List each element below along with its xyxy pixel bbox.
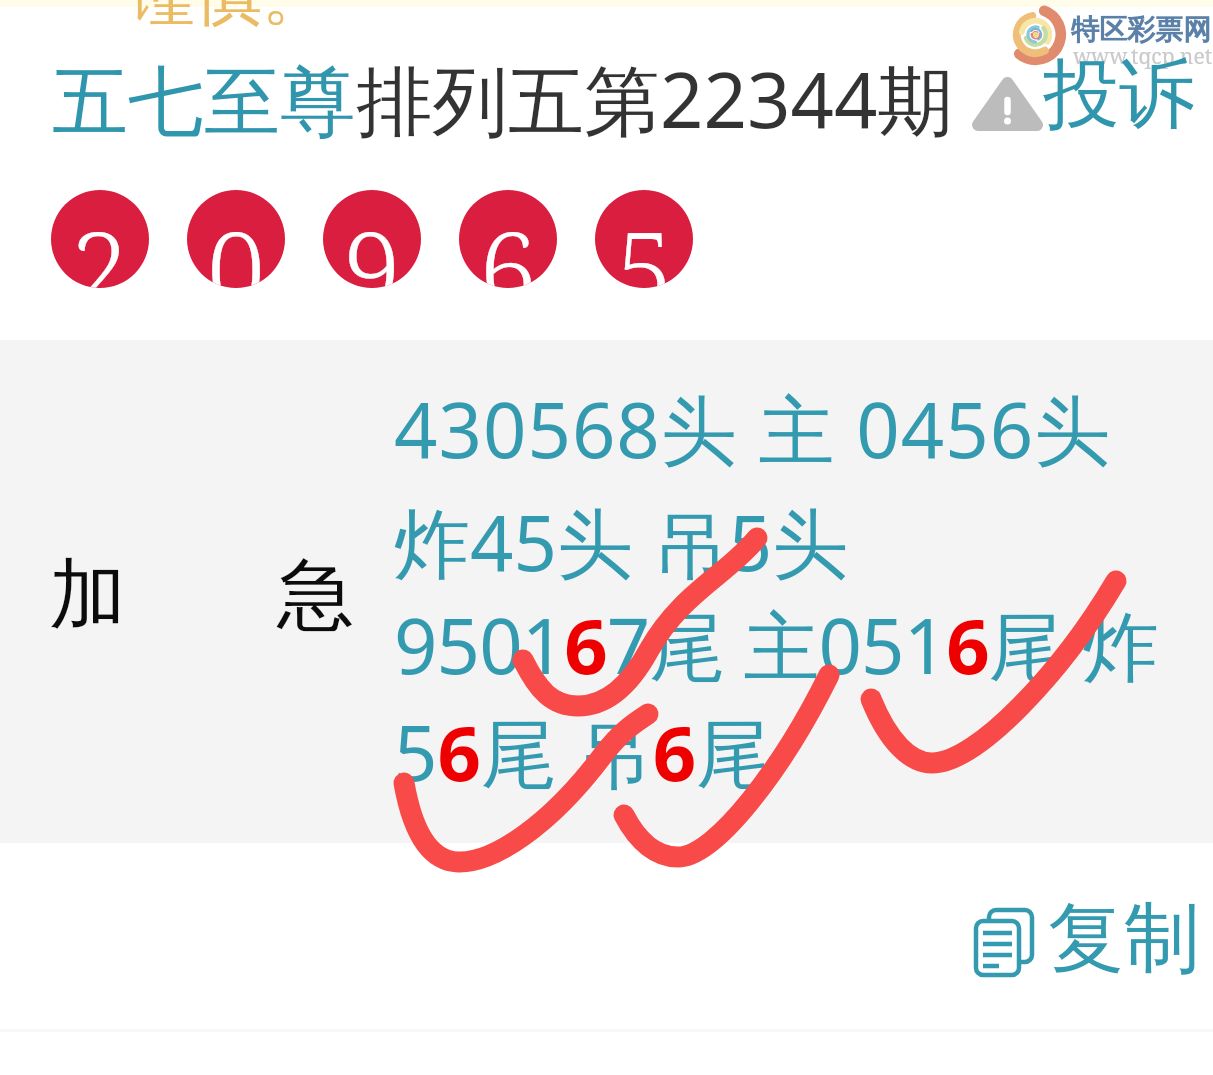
staticText: 56尾 吊6尾 xyxy=(394,700,773,804)
button[interactable]: Warning xyxy=(966,47,1195,143)
staticText: 950167尾 主0516尾 炸 xyxy=(394,593,1158,697)
staticText: 特区彩票网 xyxy=(1071,12,1211,47)
staticText: 急 xyxy=(277,547,354,644)
staticText: 加 xyxy=(49,547,126,644)
staticText: 2 xyxy=(71,197,130,288)
other: Warning xyxy=(966,47,1043,137)
staticText: 430568头 主 0456头 xyxy=(394,377,1112,481)
button[interactable]: 5 xyxy=(595,190,693,288)
button[interactable]: 6 xyxy=(459,190,557,288)
button[interactable]: 0 xyxy=(187,190,285,288)
staticText: 5 xyxy=(615,197,674,288)
staticText: 投诉 xyxy=(1043,47,1195,143)
staticText: 6 xyxy=(479,197,538,288)
button[interactable]: 2 xyxy=(51,190,149,288)
staticText: 复制 xyxy=(1048,891,1200,987)
staticText: 0 xyxy=(207,197,266,288)
staticText: www.tqcp.net xyxy=(1073,42,1213,71)
staticText: 9 xyxy=(343,197,402,288)
button[interactable]: Copy xyxy=(972,891,1200,987)
staticText: 炸45头 吊5头 xyxy=(394,490,849,594)
button[interactable]: 加 xyxy=(49,547,354,644)
other: Copy xyxy=(972,891,1044,983)
staticText: 五七至尊排列五第22344期 xyxy=(52,47,954,151)
staticText: 谨慎。 xyxy=(130,0,328,37)
button[interactable]: 9 xyxy=(323,190,421,288)
